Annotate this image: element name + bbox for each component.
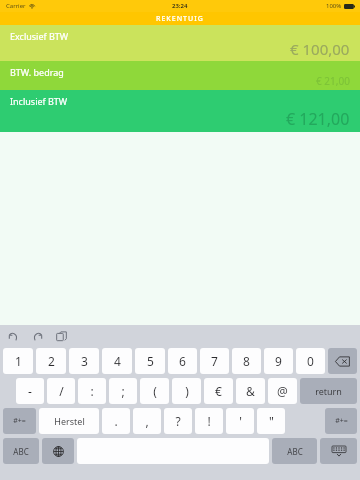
button[interactable]: BTW. bedrag (0, 61, 360, 90)
button[interactable]: ! (195, 408, 223, 434)
staticText: : (90, 383, 94, 399)
button[interactable]: Inclusief BTW (0, 90, 360, 132)
button[interactable]: ? (164, 408, 192, 434)
staticText: 1 (15, 353, 22, 369)
staticText: € 121,00 (286, 108, 350, 130)
button[interactable]: #+= (325, 408, 357, 434)
staticText: 9 (275, 353, 282, 369)
button[interactable]: Copy (54, 329, 68, 343)
button[interactable]: ; (109, 378, 137, 404)
button[interactable]: 3 (69, 348, 99, 374)
button[interactable]: 5 (135, 348, 165, 374)
button[interactable]: ' (226, 408, 254, 434)
staticText: 2 (48, 353, 55, 369)
button[interactable]: 7 (200, 348, 229, 374)
staticText: " (269, 413, 274, 429)
staticText: ABC (13, 446, 29, 457)
staticText: 5 (147, 353, 154, 369)
button[interactable]: Undo (6, 329, 20, 343)
button[interactable]: 6 (168, 348, 197, 374)
button[interactable]: ) (172, 378, 201, 404)
button[interactable]: . (102, 408, 130, 434)
button[interactable]: 2 (36, 348, 66, 374)
staticText: Carrier (6, 2, 26, 10)
staticText: @ (277, 383, 288, 399)
staticText: ) (185, 383, 189, 399)
button[interactable]: ABC (272, 438, 317, 464)
button[interactable]: / (47, 378, 75, 404)
button[interactable]: 0 (296, 348, 325, 374)
staticText: ' (239, 413, 242, 429)
button[interactable]: Exclusief BTW (0, 25, 360, 61)
staticText: ! (207, 413, 211, 429)
staticText: ? (175, 413, 181, 429)
staticText: 23:24 (172, 2, 188, 10)
staticText: € (215, 383, 222, 399)
staticText: . (114, 413, 118, 429)
staticText: BTW. bedrag (10, 66, 64, 78)
button[interactable]: Change keyboard language (42, 438, 74, 464)
staticText: Exclusief BTW (10, 30, 69, 42)
staticText: Inclusief BTW (10, 95, 68, 107)
button[interactable]: - (16, 378, 44, 404)
button[interactable]: ABC (3, 438, 39, 464)
button[interactable]: #+= (3, 408, 36, 434)
button[interactable]: Redo (30, 329, 44, 343)
staticText: € 21,00 (316, 74, 350, 88)
button[interactable]: Backspace (328, 348, 357, 374)
staticText: / (59, 383, 64, 399)
button[interactable]: @ (268, 378, 297, 404)
button[interactable]: ( (140, 378, 169, 404)
button[interactable]: 1 (3, 348, 33, 374)
staticText: Herstel (54, 415, 85, 427)
staticText: 3 (81, 353, 88, 369)
staticText: 0 (307, 353, 314, 369)
staticText: ABC (287, 446, 303, 457)
button[interactable]: Herstel (39, 408, 99, 434)
staticText: & (246, 383, 255, 399)
staticText: #+= (335, 416, 348, 426)
staticText: return (315, 385, 342, 397)
button[interactable]: 4 (102, 348, 132, 374)
button[interactable]: : (78, 378, 106, 404)
button[interactable]: , (133, 408, 161, 434)
button[interactable]: & (236, 378, 265, 404)
staticText: REKENTUIG (156, 14, 204, 24)
staticText: - (28, 383, 32, 399)
button[interactable]: 8 (232, 348, 261, 374)
staticText: 8 (243, 353, 250, 369)
staticText: 100% (326, 2, 342, 10)
button[interactable]: return (300, 378, 357, 404)
staticText: ( (153, 383, 157, 399)
staticText: 6 (179, 353, 186, 369)
button[interactable]: 9 (264, 348, 293, 374)
staticText: € 100,00 (290, 39, 350, 59)
staticText: ; (121, 383, 125, 399)
staticText: #+= (13, 416, 26, 426)
staticText: 7 (211, 353, 218, 369)
button[interactable]: Hide keyboard (320, 438, 357, 464)
button[interactable]: € (204, 378, 233, 404)
staticText: , (145, 413, 149, 429)
staticText: 4 (114, 353, 121, 369)
button[interactable]: " (257, 408, 285, 434)
